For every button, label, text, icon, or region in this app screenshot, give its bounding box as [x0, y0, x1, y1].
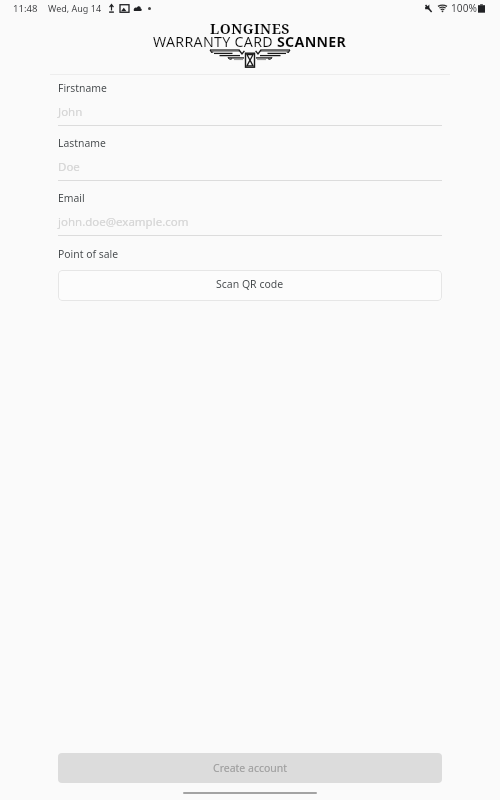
staticText: LONGINES	[210, 19, 290, 38]
staticText: Wed, Aug 14	[48, 2, 102, 14]
staticText: Point of sale	[58, 247, 119, 261]
button[interactable]: Scan QR code	[58, 270, 442, 301]
staticText: 11:48	[13, 2, 38, 15]
staticText: Firstname	[58, 81, 107, 95]
staticText: john.doe@example.com	[58, 214, 189, 230]
staticText: John	[58, 104, 83, 120]
staticText: Doe	[58, 159, 80, 175]
staticText: Lastname	[58, 136, 106, 150]
staticText: SCANNER	[277, 32, 347, 51]
staticText: WARRANTY CARD	[153, 32, 277, 51]
staticText: 100%	[451, 1, 477, 15]
staticText: Email	[58, 191, 85, 205]
button[interactable]: Create account	[58, 753, 442, 783]
staticText: Create account	[213, 761, 288, 775]
staticText: Scan QR code	[216, 277, 284, 291]
